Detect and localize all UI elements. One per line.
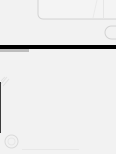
button[interactable]: Card	[38, 0, 116, 19]
button[interactable]: Profile	[5, 135, 18, 148]
